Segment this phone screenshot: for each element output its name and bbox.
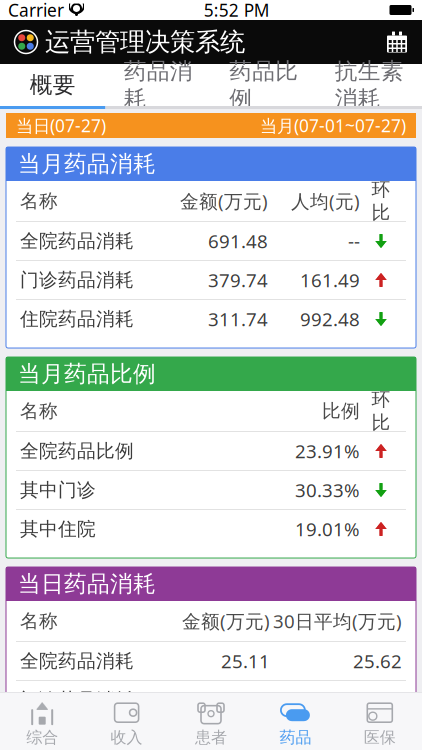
staticText: 13.15 [221,727,270,750]
button[interactable]: 收入 [84,692,169,750]
staticText: 医保 [364,728,396,747]
staticText: 药品 [279,728,311,747]
button[interactable]: 药品比例 [211,64,316,106]
staticText: 30.33% [295,478,360,502]
staticText: 全院药品比例 [20,439,134,462]
staticText: 名称 [20,189,58,212]
staticText: 综合 [26,728,58,747]
staticText: 30日平均(万元) [273,609,402,633]
staticText: 19.01% [295,517,360,541]
staticText: 当月(07-01~07-27) [260,114,406,137]
staticText: 当日药品消耗 [18,570,156,598]
staticText: 运营管理决策系统 [45,26,245,57]
staticText: 金额(万元) [180,189,268,213]
staticText: 其中门诊 [20,478,96,501]
staticText: -- [348,229,360,253]
staticText: 比例 [322,399,360,422]
staticText: 概要 [30,71,76,99]
staticText: 5:52 PM [204,0,270,21]
staticText: 161.49 [300,268,360,292]
staticText: 门诊药品消耗 [20,688,134,711]
staticText: 全院药品消耗 [20,229,134,252]
staticText: 抗生素消耗 [335,57,404,113]
staticText: 691.48 [208,229,268,253]
button[interactable]: 日历 [372,24,422,59]
staticText: 环比 [371,178,390,224]
button[interactable]: 概要 [0,64,105,106]
staticText: 379.74 [208,268,268,292]
staticText: 收入 [111,728,143,747]
staticText: 25.62 [353,649,402,673]
staticText: 住院药品消耗 [20,307,134,330]
staticText: 环比 [371,388,390,434]
staticText: 全院药品消耗 [20,649,134,672]
staticText: 23.91% [295,439,360,463]
staticText: 其中住院 [20,517,96,540]
staticText: 当月药品消耗 [18,150,156,178]
staticText: 名称 [20,399,58,422]
button[interactable]: 抗生素消耗 [316,64,422,106]
staticText: 311.74 [208,307,268,331]
staticText: 992.48 [300,307,360,331]
staticText: 门诊药品消耗 [20,268,134,291]
button[interactable]: 医保 [338,692,422,750]
staticText: 金额(万元) [182,609,270,633]
button[interactable]: 药品消耗 [105,64,211,106]
staticText: 14.06 [353,688,402,712]
staticText: 住院药品消耗 [20,727,134,750]
staticText: 药品消耗 [124,57,193,113]
staticText: 人均(元) [291,189,360,213]
staticText: 25.11 [221,649,270,673]
staticText: 11.56 [353,727,402,750]
staticText: 名称 [20,609,58,632]
button[interactable]: 综合 [0,692,84,750]
staticText [64,0,69,21]
staticText: Carrier [8,0,64,21]
button[interactable]: 患者 [169,692,253,750]
staticText: 当月药品比例 [18,360,156,388]
staticText: 11.96 [221,688,270,712]
staticText: 药品比例 [229,57,298,113]
button[interactable]: 运营管理决策系统 [0,20,245,63]
button[interactable]: 药品 [253,692,338,750]
staticText: 当日(07-27) [16,114,106,137]
staticText: 患者 [195,728,227,747]
